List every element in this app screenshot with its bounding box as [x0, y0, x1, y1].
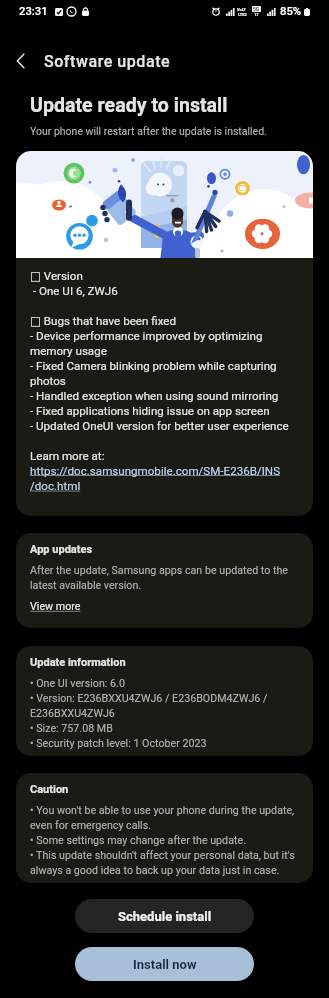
staticText: After the update, Samsung apps can be up… [30, 564, 288, 591]
button[interactable]: Install now [75, 947, 254, 981]
staticText: 23:31 [19, 5, 48, 18]
staticText: Update information [30, 656, 126, 669]
button[interactable]: View more [30, 600, 81, 613]
staticText: Install now [133, 957, 197, 972]
staticText: Software update [44, 52, 171, 71]
staticText: Schedule install [118, 909, 212, 924]
staticText: □ Version - One UI 6, ZWJ6 □ Bugs that h… [30, 269, 289, 493]
button[interactable]: Back [0, 40, 42, 82]
button[interactable]: Schedule install [75, 899, 254, 933]
staticText: Update ready to install [30, 94, 228, 117]
staticText: LTE2 [238, 12, 247, 17]
staticText: 85% [280, 5, 302, 18]
staticText: 17 [254, 12, 259, 17]
staticText: 5G [253, 6, 260, 12]
staticText: Your phone will restart after the update… [30, 125, 267, 137]
staticText: • One UI version: 6.0 • Version: E236BXX… [30, 677, 268, 749]
staticText: Caution [30, 783, 69, 796]
staticText: VoLT [237, 7, 247, 12]
staticText: • You won't be able to use your phone du… [30, 804, 295, 876]
staticText: App updates [30, 543, 93, 556]
